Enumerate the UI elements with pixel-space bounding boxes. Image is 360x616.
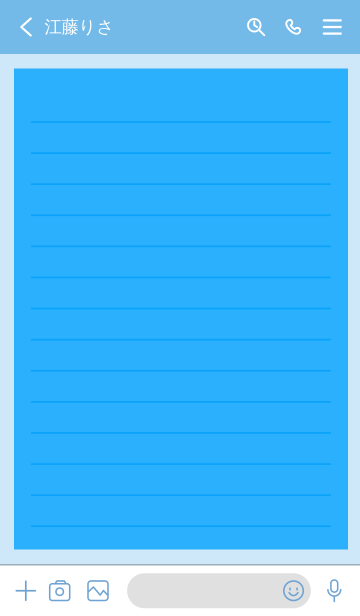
button[interactable]: Add attachment bbox=[9, 566, 43, 616]
button[interactable]: Photo library bbox=[77, 566, 119, 616]
button[interactable]: Voice message bbox=[311, 566, 358, 616]
button[interactable]: Camera bbox=[43, 566, 77, 616]
staticText: 江藤りさ bbox=[44, 16, 114, 38]
button[interactable]: Message input field bbox=[127, 573, 311, 608]
button[interactable]: Call bbox=[273, 0, 313, 54]
button[interactable]: Stickers and emoji bbox=[276, 573, 311, 608]
button[interactable]: Back bbox=[11, 0, 40, 54]
button[interactable]: Search in chat bbox=[239, 0, 273, 54]
button[interactable]: Menu bbox=[313, 0, 351, 54]
